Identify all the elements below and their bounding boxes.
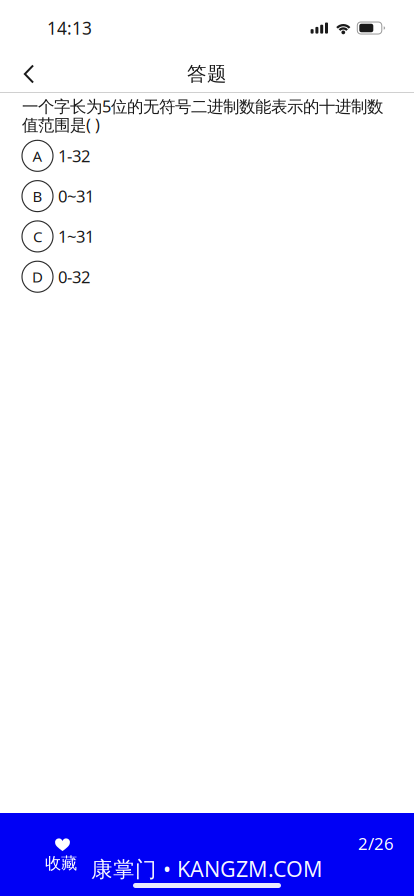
staticText: 0-32 bbox=[58, 265, 90, 288]
staticText: 1-32 bbox=[58, 144, 90, 167]
staticText: C bbox=[33, 226, 42, 247]
button[interactable]: D bbox=[0, 257, 414, 297]
staticText: 0~31 bbox=[58, 185, 94, 207]
staticText: 康掌门 • KANGZM.COM bbox=[91, 854, 323, 883]
staticText: 2/26 bbox=[358, 832, 394, 855]
staticText: 答题 bbox=[187, 62, 227, 86]
button[interactable]: B bbox=[0, 176, 414, 216]
staticText: A bbox=[32, 146, 42, 166]
staticText: D bbox=[32, 266, 43, 287]
staticText: 14:13 bbox=[47, 16, 92, 40]
staticText: B bbox=[32, 186, 42, 206]
button[interactable]: C bbox=[0, 216, 414, 257]
staticText: 一个字长为5位的无符号二进制数能表示的十进制数值范围是( ) bbox=[22, 95, 383, 136]
button[interactable]: 收藏 bbox=[22, 813, 100, 896]
staticText: 收藏 bbox=[45, 853, 77, 874]
button[interactable]: 返回 bbox=[6, 56, 52, 92]
button[interactable]: A bbox=[0, 136, 414, 176]
staticText: 1~31 bbox=[58, 225, 94, 248]
